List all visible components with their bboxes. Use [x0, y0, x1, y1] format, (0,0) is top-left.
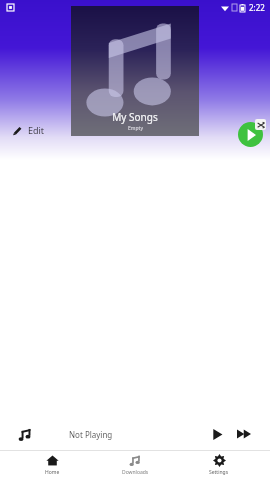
button[interactable]: My Songs — [71, 6, 199, 136]
staticText: Empty — [128, 125, 143, 132]
staticText: Settings — [209, 469, 229, 476]
staticText: Home — [45, 469, 60, 476]
button[interactable]: Edit — [6, 120, 51, 140]
staticText: Not Playing — [69, 429, 113, 440]
staticText: 2:22 — [249, 2, 265, 13]
button[interactable]: Home — [20, 450, 84, 480]
staticText: Downloads — [122, 469, 149, 476]
button[interactable]: Not Playing — [0, 418, 270, 450]
button[interactable]: Shuffle — [255, 119, 266, 130]
staticText: My Songs — [112, 110, 158, 124]
button[interactable]: Settings — [187, 450, 251, 480]
button[interactable]: Play all — [238, 122, 263, 147]
button[interactable]: Downloads — [103, 450, 167, 480]
button[interactable]: Next — [233, 423, 255, 445]
button[interactable]: Play — [206, 423, 228, 445]
staticText: Edit — [28, 124, 45, 136]
